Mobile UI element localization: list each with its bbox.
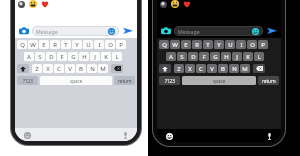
button[interactable]: Send xyxy=(266,26,278,36)
button[interactable]: Camera xyxy=(160,26,171,36)
button[interactable]: Emoji xyxy=(164,131,174,141)
button[interactable]: I xyxy=(236,40,246,49)
button[interactable]: space xyxy=(40,76,112,85)
button[interactable]: L xyxy=(254,52,264,61)
staticText: Y xyxy=(75,41,79,49)
staticText: W xyxy=(172,41,178,49)
button[interactable]: N xyxy=(229,64,239,73)
button[interactable]: ?123 xyxy=(159,76,180,85)
button[interactable]: C xyxy=(54,64,64,73)
button[interactable]: O xyxy=(247,40,257,49)
button[interactable]: Voice input xyxy=(264,131,274,141)
button[interactable]: Q xyxy=(17,40,27,49)
button[interactable]: L xyxy=(112,52,122,61)
button[interactable]: P xyxy=(116,40,126,49)
button[interactable]: T xyxy=(203,40,213,49)
staticText: T xyxy=(64,41,68,49)
button[interactable]: X xyxy=(185,64,195,73)
button[interactable]: G xyxy=(210,52,220,61)
button[interactable]: E xyxy=(181,40,191,49)
staticText: C xyxy=(199,65,203,73)
button[interactable]: J xyxy=(232,52,242,61)
button[interactable]: return xyxy=(258,76,279,85)
button[interactable]: Send xyxy=(122,26,134,36)
staticText: E xyxy=(42,41,46,49)
staticText: J xyxy=(236,53,238,61)
staticText: X xyxy=(46,65,50,73)
button[interactable]: Message xyxy=(32,26,119,36)
button[interactable]: Emoji xyxy=(22,130,32,140)
button[interactable]: V xyxy=(65,64,75,73)
button[interactable]: M xyxy=(98,64,108,73)
staticText: P xyxy=(119,41,123,49)
staticText: X xyxy=(188,65,192,73)
staticText: L xyxy=(257,53,261,61)
button[interactable]: G xyxy=(68,52,78,61)
button[interactable]: Shift xyxy=(159,64,171,73)
staticText: F xyxy=(60,53,64,61)
staticText: O xyxy=(108,41,113,49)
staticText: K xyxy=(246,53,250,61)
button[interactable]: A xyxy=(166,52,176,61)
button[interactable]: T xyxy=(61,40,71,49)
button[interactable]: K xyxy=(243,52,253,61)
staticText: M xyxy=(100,65,106,73)
button[interactable]: S xyxy=(177,52,187,61)
button[interactable]: E xyxy=(39,40,49,49)
button[interactable]: Backspace xyxy=(253,64,265,73)
button[interactable]: D xyxy=(188,52,198,61)
button[interactable]: O xyxy=(105,40,115,49)
button[interactable]: space xyxy=(182,76,256,85)
button[interactable]: Y xyxy=(214,40,224,49)
staticText: O xyxy=(250,41,255,49)
button[interactable]: I xyxy=(94,40,104,49)
staticText: W xyxy=(30,41,36,49)
staticText: V xyxy=(68,65,72,73)
button[interactable]: Camera xyxy=(18,26,29,36)
staticText: H xyxy=(224,53,229,61)
button[interactable]: return xyxy=(114,76,135,85)
button[interactable]: W xyxy=(170,40,180,49)
button[interactable]: Z xyxy=(174,64,184,73)
staticText: S xyxy=(38,53,42,61)
button[interactable]: H xyxy=(79,52,89,61)
button[interactable]: W xyxy=(28,40,38,49)
button[interactable]: K xyxy=(101,52,111,61)
staticText: U xyxy=(228,41,233,49)
button[interactable]: C xyxy=(196,64,206,73)
button[interactable]: U xyxy=(225,40,235,49)
button[interactable]: M xyxy=(240,64,250,73)
button[interactable]: Voice input xyxy=(120,130,130,140)
button[interactable]: H xyxy=(221,52,231,61)
button[interactable]: B xyxy=(218,64,228,73)
button[interactable]: Shift xyxy=(17,64,29,73)
button[interactable]: Z xyxy=(32,64,42,73)
button[interactable]: Q xyxy=(159,40,169,49)
button[interactable]: P xyxy=(258,40,268,49)
button[interactable]: J xyxy=(90,52,100,61)
staticText: Q xyxy=(20,41,25,49)
staticText: R xyxy=(53,41,57,49)
staticText: N xyxy=(232,65,237,73)
button[interactable]: D xyxy=(46,52,56,61)
button[interactable]: R xyxy=(192,40,202,49)
button[interactable]: A xyxy=(24,52,34,61)
button[interactable]: S xyxy=(35,52,45,61)
staticText: L xyxy=(115,53,119,61)
button[interactable]: R xyxy=(50,40,60,49)
button[interactable]: Y xyxy=(72,40,82,49)
button[interactable]: B xyxy=(76,64,86,73)
staticText: D xyxy=(49,53,54,61)
button[interactable]: F xyxy=(57,52,67,61)
button[interactable]: F xyxy=(199,52,209,61)
button[interactable]: Backspace xyxy=(111,64,123,73)
button[interactable]: ?123 xyxy=(17,76,38,85)
button[interactable]: Message xyxy=(174,26,263,36)
button[interactable]: U xyxy=(83,40,93,49)
staticText: P xyxy=(261,41,265,49)
button[interactable]: N xyxy=(87,64,97,73)
button[interactable]: X xyxy=(43,64,53,73)
button[interactable]: V xyxy=(207,64,217,73)
staticText: ?123 xyxy=(23,78,33,84)
staticText: M xyxy=(242,65,248,73)
